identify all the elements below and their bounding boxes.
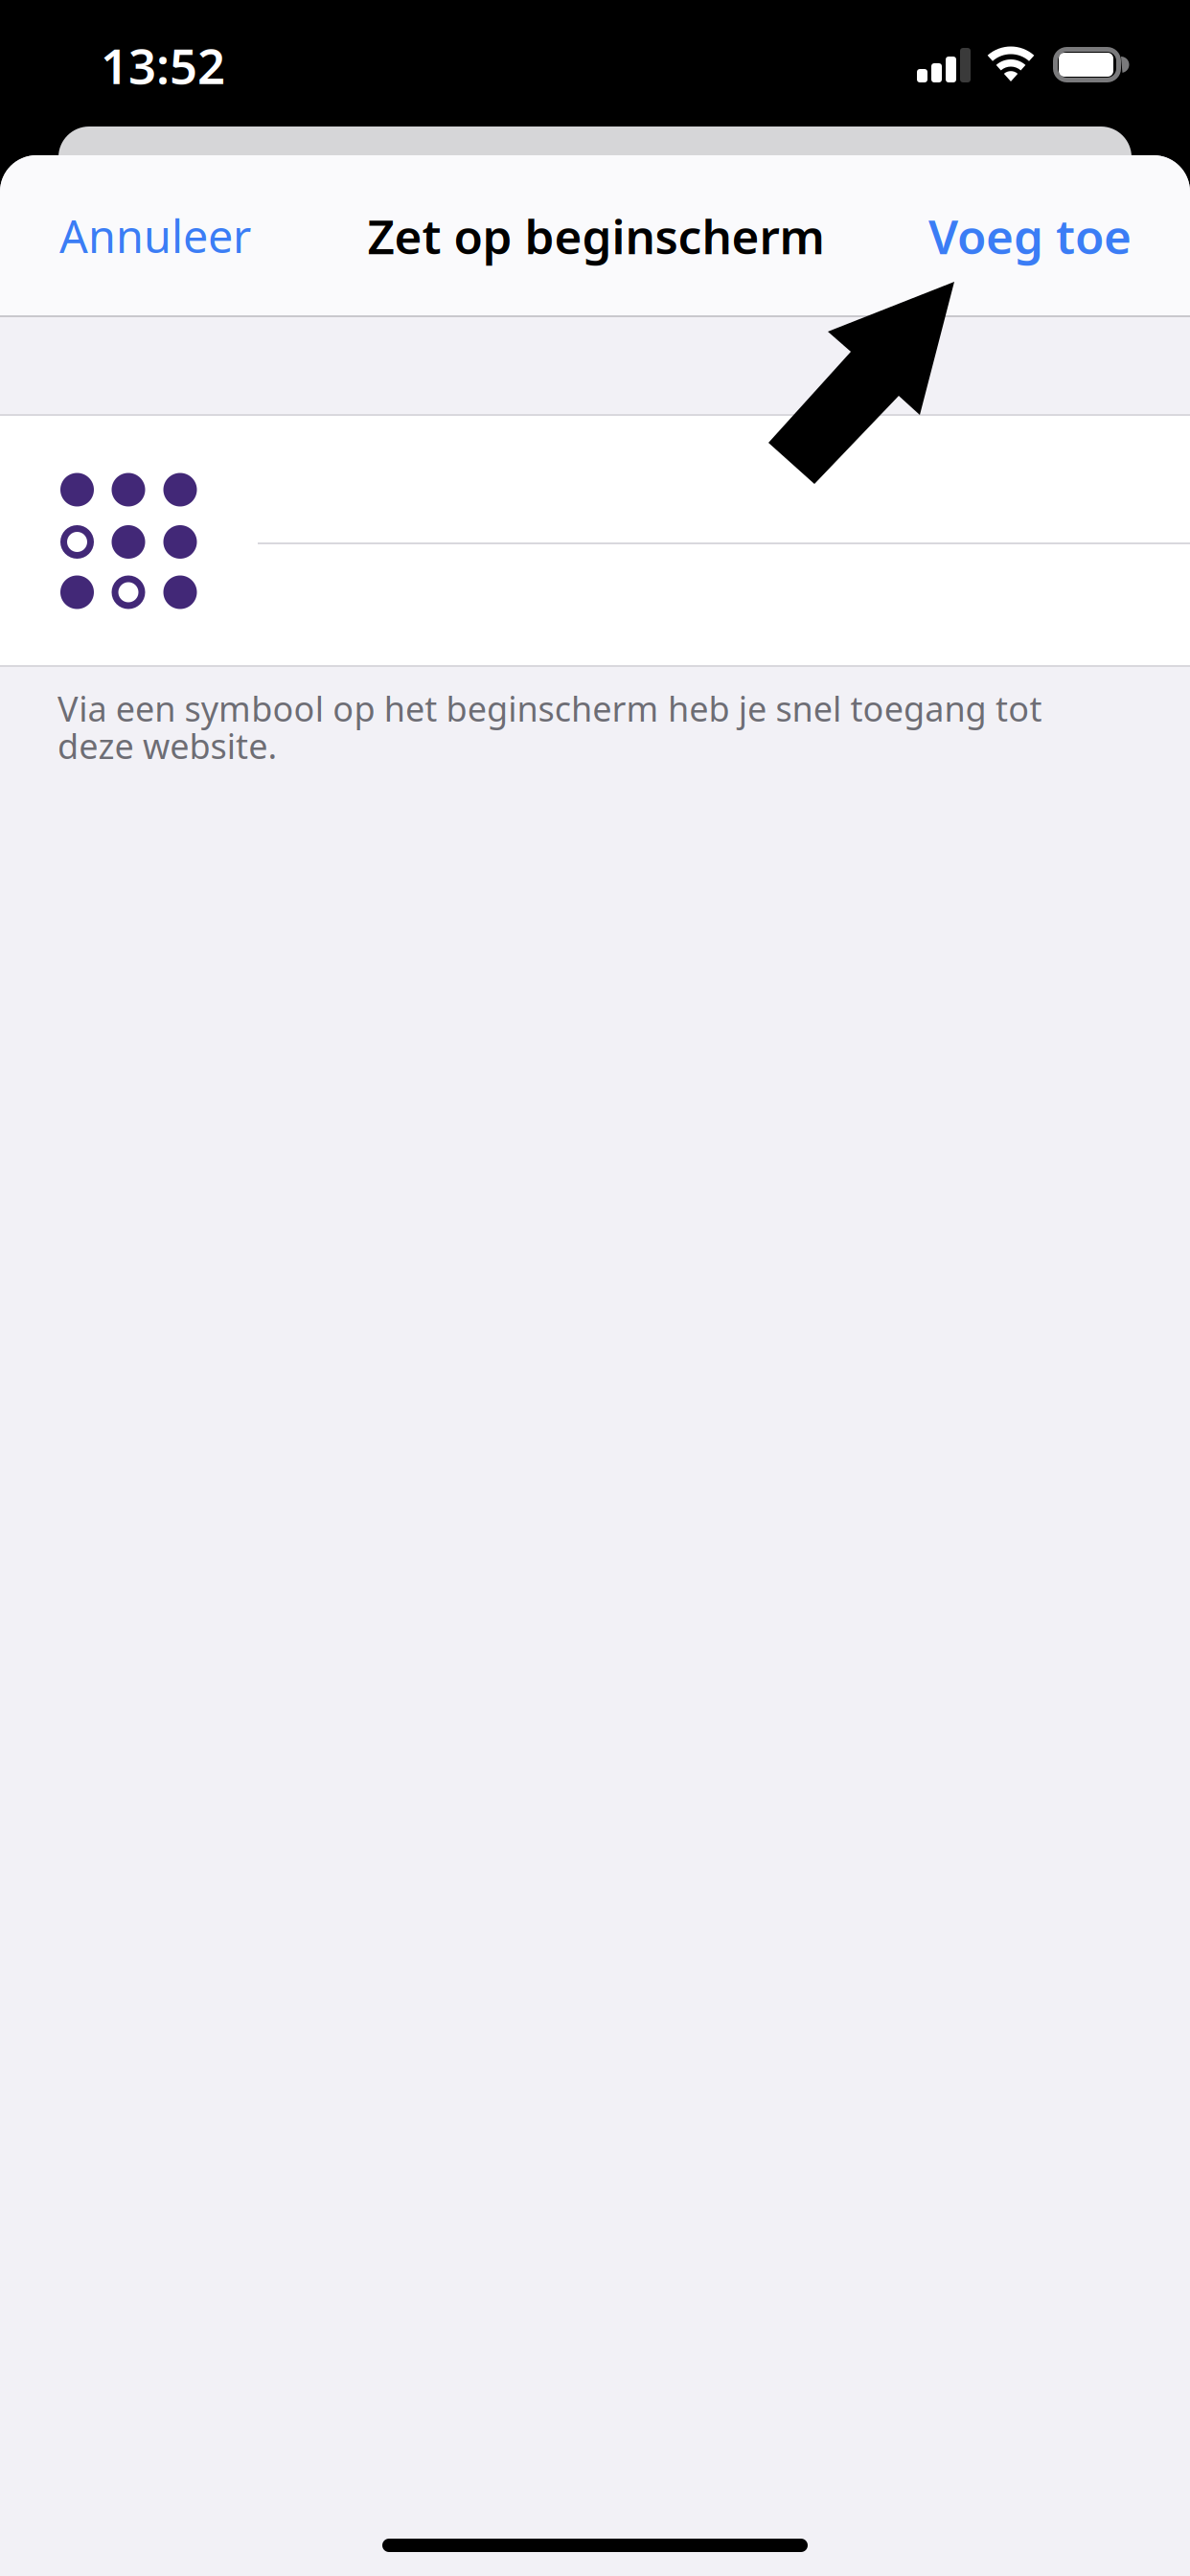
staticText: deze website. — [57, 723, 277, 768]
button[interactable]: Voeg toe — [863, 176, 1132, 295]
staticText: 13:52 — [101, 33, 225, 97]
staticText: Voeg toe — [928, 204, 1132, 267]
button[interactable]: Annuleer — [59, 176, 328, 295]
staticText: Zet op beginscherm — [367, 204, 824, 267]
staticText: Via een symbool op het beginscherm heb j… — [57, 685, 1042, 731]
staticText: Annuleer — [59, 206, 251, 265]
